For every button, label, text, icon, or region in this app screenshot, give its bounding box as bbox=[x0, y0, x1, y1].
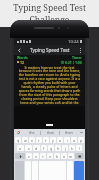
button[interactable]: f bbox=[41, 145, 47, 151]
button[interactable]: v bbox=[47, 153, 53, 159]
staticText: e bbox=[31, 138, 34, 143]
button[interactable]: w bbox=[22, 137, 28, 143]
staticText: o bbox=[73, 138, 76, 143]
staticText: d bbox=[35, 146, 38, 151]
staticText: 12 bbox=[20, 60, 24, 64]
button[interactable]: g bbox=[48, 145, 54, 151]
button[interactable]: Google search bbox=[14, 129, 23, 136]
staticText: s bbox=[28, 146, 30, 151]
staticText: Words bbox=[17, 55, 28, 60]
staticText: It matters how we treat the test because… bbox=[18, 65, 81, 105]
staticText: Typing Speed Test bbox=[30, 47, 70, 53]
button[interactable]: y bbox=[50, 137, 56, 143]
staticText: that bbox=[47, 130, 54, 135]
staticText: y bbox=[52, 138, 54, 143]
staticText: u bbox=[59, 138, 62, 143]
staticText: c bbox=[42, 154, 44, 159]
staticText: p bbox=[80, 138, 83, 143]
button[interactable]: that bbox=[41, 129, 59, 136]
button[interactable]: q bbox=[15, 137, 21, 143]
staticText: f bbox=[43, 146, 45, 151]
button[interactable]: u bbox=[57, 137, 63, 143]
staticText: v bbox=[49, 154, 51, 159]
button[interactable]: h bbox=[55, 145, 61, 151]
button[interactable]: k bbox=[69, 145, 75, 151]
button[interactable]: a bbox=[17, 145, 24, 151]
staticText: x bbox=[35, 154, 37, 159]
staticText: 0:21 / 1:00 bbox=[65, 60, 82, 64]
button[interactable]: j bbox=[62, 145, 68, 151]
staticText: the bbox=[29, 130, 35, 135]
button[interactable]: o bbox=[71, 137, 77, 143]
button[interactable]: l bbox=[76, 145, 82, 151]
staticText: then bbox=[65, 130, 73, 135]
button[interactable]: p bbox=[78, 137, 84, 143]
staticText: z bbox=[28, 154, 30, 159]
staticText: i bbox=[67, 138, 68, 143]
button[interactable]: r bbox=[36, 137, 42, 143]
button[interactable]: x bbox=[33, 153, 39, 159]
staticText: n bbox=[63, 154, 66, 159]
staticText: m bbox=[69, 154, 73, 159]
button[interactable]: Expand suggestions bbox=[78, 129, 85, 136]
staticText: r bbox=[38, 138, 40, 143]
button[interactable]: c bbox=[40, 153, 46, 159]
staticText: b bbox=[56, 154, 59, 159]
staticText: q bbox=[17, 138, 20, 143]
staticText: Typing Speed Test Challenge bbox=[0, 2, 99, 26]
staticText: t bbox=[45, 138, 47, 143]
button[interactable]: the bbox=[23, 129, 40, 136]
button[interactable]: e bbox=[29, 137, 35, 143]
button[interactable]: m bbox=[68, 153, 74, 159]
staticText: k bbox=[71, 146, 73, 151]
button[interactable]: Backspace bbox=[75, 153, 84, 159]
button[interactable]: Shift bbox=[15, 153, 25, 159]
staticText: j bbox=[65, 146, 66, 151]
button[interactable]: Enter bbox=[74, 161, 84, 180]
button[interactable]: b bbox=[54, 153, 60, 159]
button[interactable]: d bbox=[33, 145, 40, 151]
staticText: l bbox=[79, 146, 80, 151]
staticText: g bbox=[50, 146, 53, 151]
button[interactable]: then bbox=[60, 129, 78, 136]
button[interactable]: n bbox=[61, 153, 67, 159]
button[interactable]: s bbox=[25, 145, 32, 151]
button[interactable]: z bbox=[26, 153, 32, 159]
button[interactable]: i bbox=[64, 137, 70, 143]
button[interactable]: t bbox=[43, 137, 49, 143]
staticText: w bbox=[24, 138, 27, 143]
staticText: 10:24 bbox=[68, 39, 79, 45]
staticText: Timer bbox=[72, 55, 82, 60]
button[interactable]: Back bbox=[14, 45, 24, 55]
staticText: h bbox=[57, 146, 60, 151]
button[interactable]: More options bbox=[75, 45, 85, 55]
staticText: a bbox=[19, 146, 22, 151]
